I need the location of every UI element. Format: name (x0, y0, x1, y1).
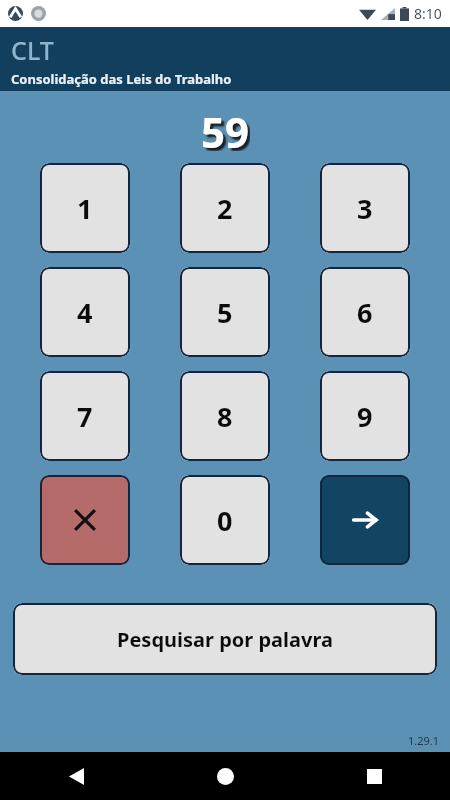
staticText: 5 (217, 294, 233, 331)
button[interactable]: 5 (180, 267, 270, 357)
staticText: 1 (77, 190, 93, 227)
staticText: CLT (11, 33, 54, 67)
button[interactable]: Back (54, 754, 98, 798)
staticText: 8 (217, 398, 233, 435)
staticText: Pesquisar por palavra (117, 626, 333, 653)
button[interactable]: 8 (180, 371, 270, 461)
button[interactable]: Clear (40, 475, 130, 565)
button[interactable]: 1 (40, 163, 130, 253)
button[interactable]: Recent apps (352, 754, 396, 798)
button[interactable]: 4 (40, 267, 130, 357)
button[interactable]: 6 (320, 267, 410, 357)
staticText: 6 (357, 294, 373, 331)
button[interactable]: Search by article number (320, 475, 410, 565)
staticText: Consolidação das Leis do Trabalho (11, 70, 232, 88)
button[interactable]: 0 (180, 475, 270, 565)
staticText: 0 (217, 502, 233, 539)
button[interactable]: Pesquisar por palavra (13, 603, 437, 675)
staticText: 7 (77, 398, 93, 435)
staticText: 59 (201, 103, 250, 151)
staticText: 3 (357, 190, 373, 227)
staticText: 2 (217, 190, 233, 227)
button[interactable]: 3 (320, 163, 410, 253)
button[interactable]: 2 (180, 163, 270, 253)
button[interactable]: Home (203, 754, 247, 798)
button[interactable]: 7 (40, 371, 130, 461)
staticText: 8:10 (414, 4, 442, 23)
staticText: 4 (77, 294, 93, 331)
button[interactable]: 9 (320, 371, 410, 461)
staticText: 9 (357, 398, 373, 435)
staticText: 1.29.1 (408, 733, 440, 748)
